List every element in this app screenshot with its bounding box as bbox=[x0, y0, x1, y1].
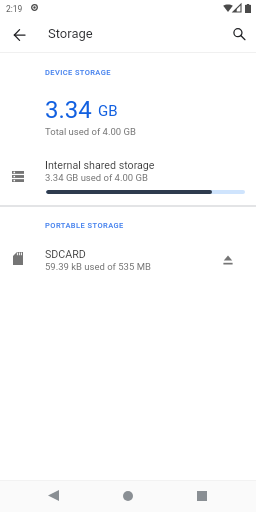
button[interactable]: Home bbox=[115, 483, 140, 508]
staticText: Internal shared storage bbox=[45, 159, 155, 172]
button[interactable]: Back bbox=[41, 483, 66, 508]
staticText: 59.39 kB used of 535 MB bbox=[45, 261, 151, 272]
staticText: PORTABLE STORAGE bbox=[45, 221, 124, 230]
staticText: 3.34 GB used of 4.00 GB bbox=[45, 172, 148, 183]
button[interactable]: Recent apps bbox=[189, 483, 214, 508]
button[interactable]: Search bbox=[226, 21, 253, 48]
staticText: 2:19 bbox=[6, 4, 23, 14]
staticText: Storage bbox=[48, 26, 93, 41]
button[interactable]: Navigate up bbox=[6, 21, 33, 48]
staticText: GB bbox=[98, 102, 118, 120]
button[interactable]: SDCARD bbox=[0, 238, 256, 282]
button[interactable]: Internal shared storage bbox=[0, 152, 256, 198]
staticText: 3.34 bbox=[45, 96, 92, 124]
staticText: DEVICE STORAGE bbox=[45, 68, 111, 77]
button[interactable]: Eject SD card bbox=[214, 246, 241, 273]
staticText: SDCARD bbox=[45, 248, 86, 261]
staticText: Total used of 4.00 GB bbox=[45, 126, 136, 137]
